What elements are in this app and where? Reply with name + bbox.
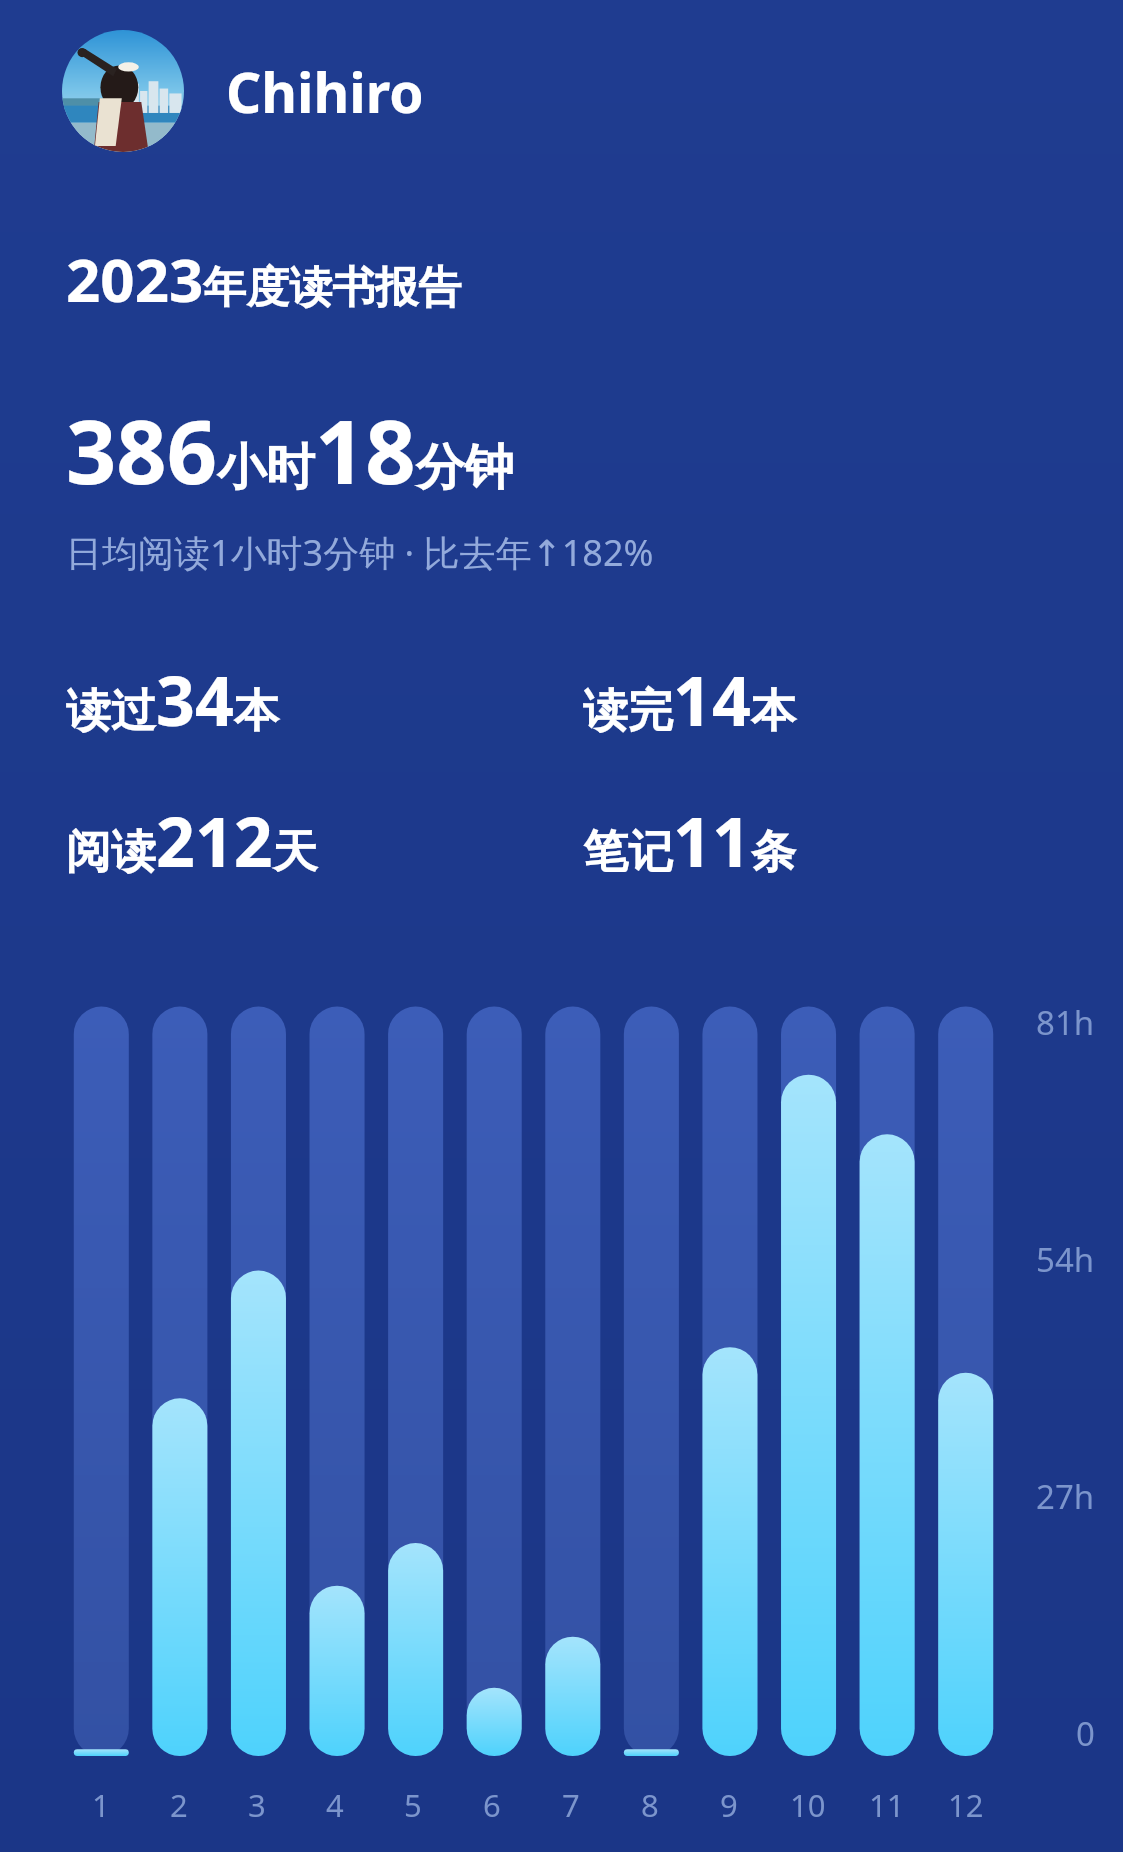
staticText: 读过34本 [66,653,279,746]
staticText: 10 [790,1784,826,1826]
button[interactable]: Profile photo [62,30,1083,152]
staticText: Chihiro [226,54,424,129]
staticText: 5 [404,1784,422,1826]
staticText: 54h [1036,1237,1095,1282]
staticText: 2 [170,1784,188,1826]
button[interactable]: 读完14本 [583,653,1123,746]
staticText: 7 [562,1784,580,1826]
other: Profile photo [62,30,184,152]
staticText: 1 [92,1784,110,1826]
button[interactable]: 读过34本 [66,653,561,746]
staticText: 386小时18分钟 [66,390,514,510]
staticText: 阅读212天 [66,794,318,887]
staticText: 2023年度读书报告 [66,238,462,320]
staticText: 3 [248,1784,266,1826]
button[interactable]: 笔记11条 [583,794,1123,887]
staticText: 0 [1076,1711,1095,1756]
button[interactable]: 阅读212天 [66,794,561,887]
staticText: 笔记11条 [583,794,796,887]
staticText: 9 [720,1784,738,1826]
staticText: 6 [483,1784,501,1826]
staticText: 4 [326,1784,344,1826]
staticText: 读完14本 [583,653,796,746]
staticText: 12 [948,1784,984,1826]
staticText: 8 [641,1784,659,1826]
staticText: 日均阅读1小时3分钟 · 比去年↑182% [66,528,654,577]
staticText: 81h [1036,1000,1095,1045]
staticText: 11 [869,1784,905,1826]
staticText: 27h [1036,1474,1095,1519]
